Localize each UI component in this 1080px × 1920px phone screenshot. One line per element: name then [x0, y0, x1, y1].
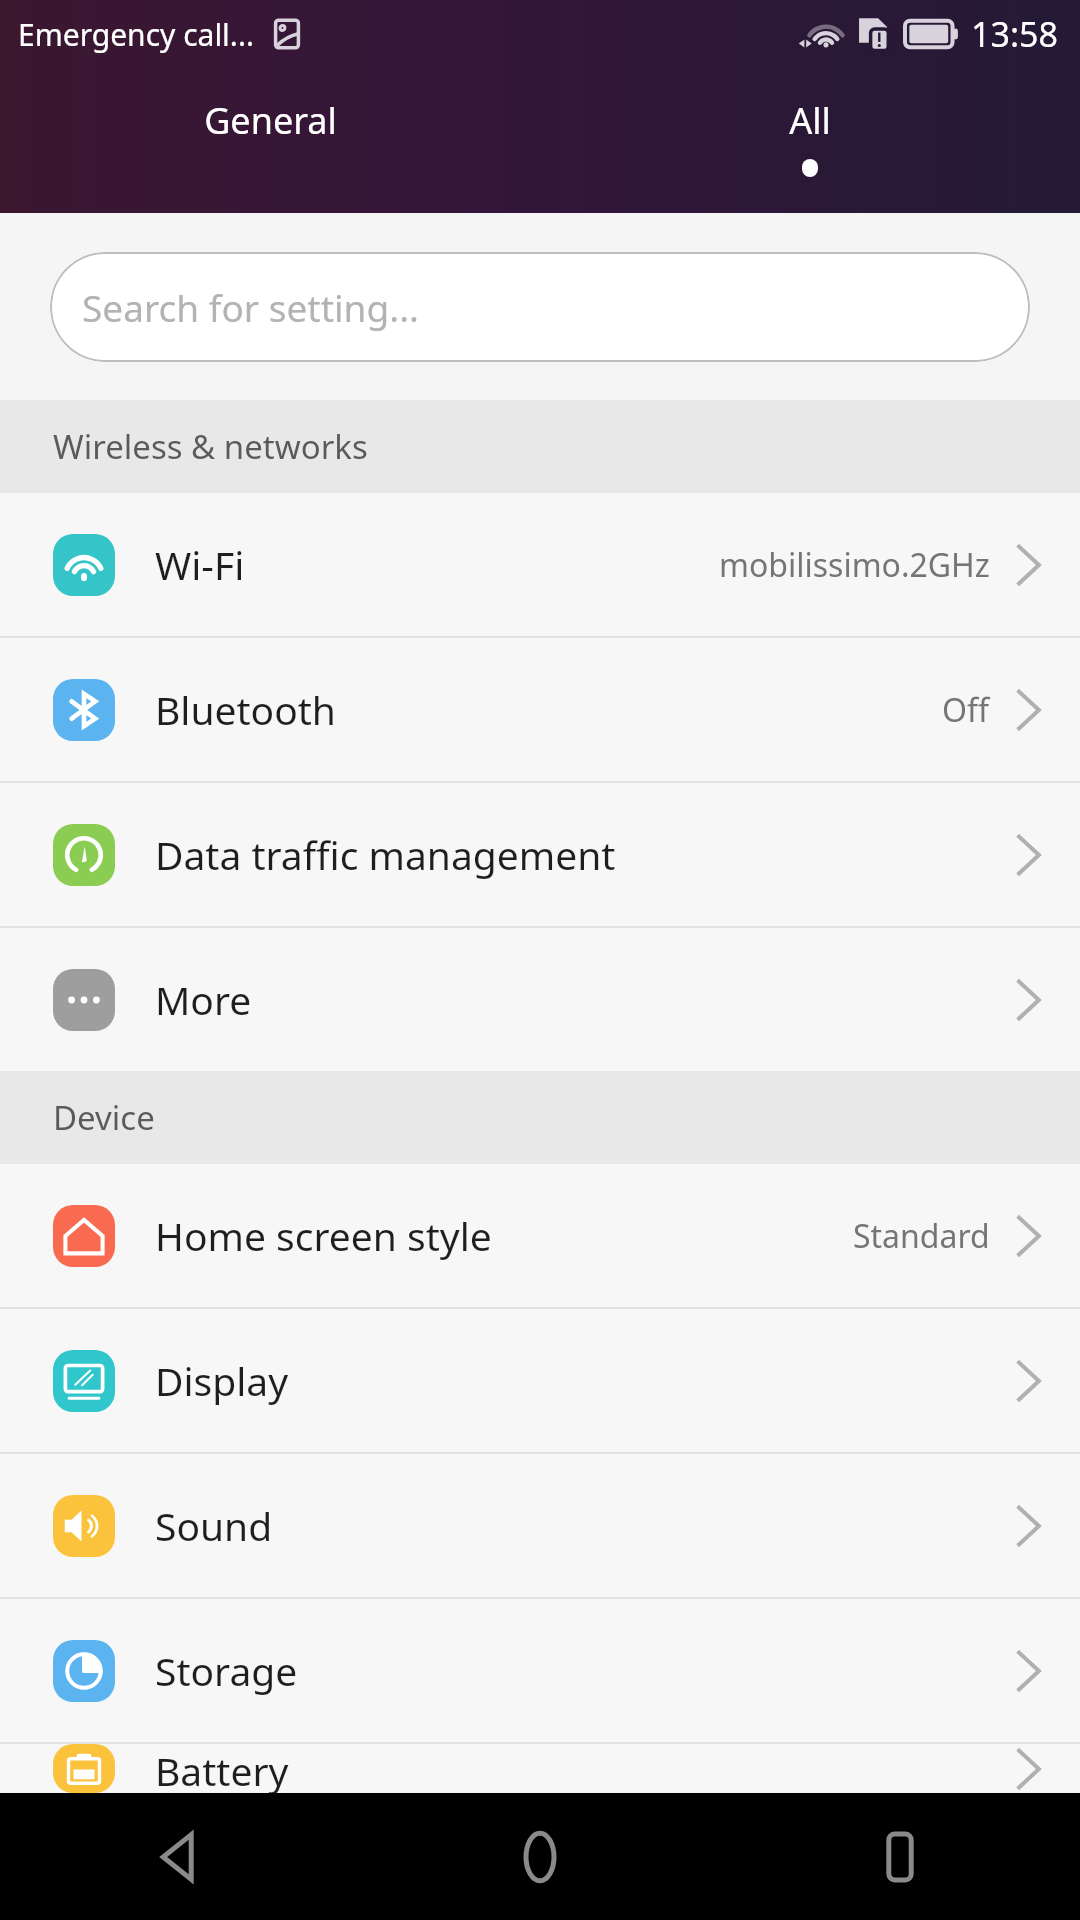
button[interactable]: Display: [0, 1309, 1080, 1452]
staticText: Search for setting...: [82, 282, 419, 332]
staticText: 13:58: [971, 11, 1058, 57]
staticText: More: [155, 973, 252, 1026]
button[interactable]: Search for setting...: [50, 252, 1030, 362]
button[interactable]: Data traffic management: [0, 783, 1080, 926]
staticText: Home screen style: [155, 1209, 492, 1262]
button[interactable]: Recents: [720, 1793, 1080, 1920]
staticText: Storage: [155, 1644, 298, 1697]
button[interactable]: Bluetooth: [0, 638, 1080, 781]
button[interactable]: More: [0, 928, 1080, 1071]
staticText: Data traffic management: [155, 828, 616, 881]
staticText: Wi-Fi: [155, 538, 245, 591]
staticText: Bluetooth: [155, 683, 336, 736]
button[interactable]: Home: [360, 1793, 720, 1920]
staticText: All: [789, 96, 831, 145]
staticText: Sound: [155, 1499, 273, 1552]
button[interactable]: Battery: [0, 1744, 1080, 1793]
staticText: mobilissimo.2GHz: [719, 543, 990, 587]
staticText: Display: [155, 1354, 289, 1407]
button[interactable]: Storage: [0, 1599, 1080, 1742]
button[interactable]: All: [540, 88, 1080, 177]
button[interactable]: Wi-Fi: [0, 493, 1080, 636]
staticText: Emergency call...: [18, 14, 254, 55]
staticText: Battery: [155, 1744, 289, 1793]
staticText: Off: [942, 688, 990, 732]
staticText: General: [204, 96, 337, 145]
staticText: Standard: [853, 1214, 990, 1258]
button[interactable]: Back: [0, 1793, 360, 1920]
staticText: Wireless & networks: [53, 424, 368, 469]
button[interactable]: General: [0, 88, 540, 159]
button[interactable]: Home screen style: [0, 1164, 1080, 1307]
button[interactable]: Sound: [0, 1454, 1080, 1597]
staticText: Device: [53, 1095, 155, 1140]
